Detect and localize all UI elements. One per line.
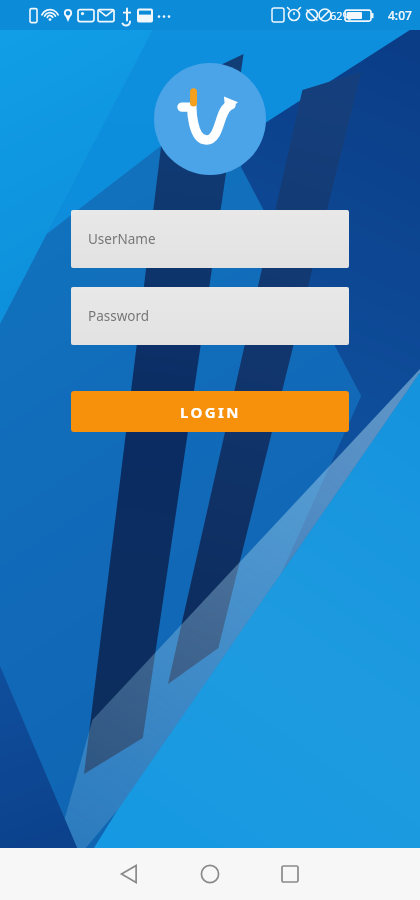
button[interactable]: Recents <box>266 850 314 898</box>
staticText: UserName <box>88 230 156 248</box>
button[interactable]: UserName <box>71 210 349 268</box>
staticText: LOGIN <box>180 402 241 422</box>
button[interactable]: Home <box>186 850 234 898</box>
staticText: 4:07 <box>388 7 412 23</box>
button[interactable]: Back <box>106 850 154 898</box>
other: App logo <box>154 63 266 175</box>
button[interactable]: Password <box>71 287 349 345</box>
staticText: 62% <box>330 8 352 23</box>
button[interactable]: LOGIN <box>71 391 349 432</box>
staticText: Password <box>88 307 150 325</box>
